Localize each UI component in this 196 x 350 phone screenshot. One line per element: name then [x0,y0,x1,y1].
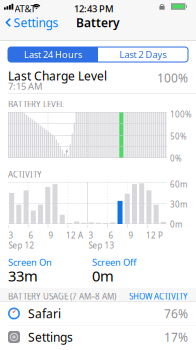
staticText: 9 [48,230,53,241]
staticText: 30m [170,199,187,210]
staticText: 7:15 AM [8,80,42,92]
staticText: Screen On [8,256,52,268]
staticText: BATTERY LEVEL [8,99,64,110]
staticText: Last Charge Level [8,68,107,84]
staticText: ACTIVITY [8,169,42,180]
button[interactable]: Settings [0,325,196,348]
staticText: 60m [170,179,187,190]
staticText: 6 [28,230,33,241]
staticText: 0m [92,266,114,285]
staticText: 17% [164,329,188,345]
staticText: 9 [128,230,133,241]
staticText: 50% [170,131,187,142]
staticText: SHOW ACTIVITY [129,291,188,302]
button[interactable]: Safari [0,302,196,325]
staticText: 33m [8,266,38,285]
staticText: 0% [170,153,182,164]
button[interactable]: Settings [3,15,60,30]
button[interactable]: Last 24 Hours [8,47,98,62]
staticText: 100% [157,70,188,86]
staticText: 6 [108,230,113,241]
staticText: Settings [13,14,58,30]
staticText: Last 2 Days [119,48,166,61]
button[interactable]: Last 2 Days [98,47,188,62]
staticText: 12 A [66,230,83,241]
staticText: 0m [170,219,182,230]
staticText: Safari [28,305,61,321]
staticText: 12:43 PM [74,2,114,15]
staticText: Last 24 Hours [24,48,82,61]
staticText: Battery [76,14,120,30]
staticText: 3 [88,230,93,241]
staticText: BATTERY USAGE (7 AM–8 AM) [8,291,116,302]
staticText: 76% [164,305,188,321]
staticText: AT&T [14,2,35,15]
staticText: 12 P [146,230,163,241]
staticText: 100% [170,109,192,120]
staticText: Sep 13 [88,240,114,251]
staticText: Screen Off [92,256,136,268]
staticText: Sep 12 [8,240,34,251]
staticText: Settings [28,329,73,345]
button[interactable]: SHOW ACTIVITY [129,291,188,302]
staticText: 3 [8,230,13,241]
